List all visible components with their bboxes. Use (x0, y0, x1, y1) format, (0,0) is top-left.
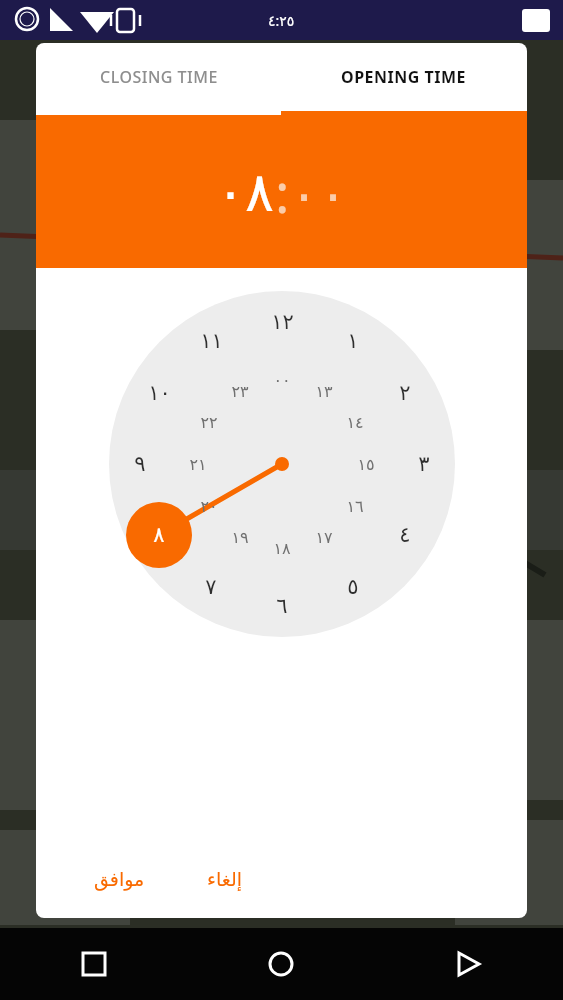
staticText: ٥ (347, 575, 359, 599)
button[interactable]: ٧ (192, 568, 230, 606)
button[interactable]: إلغاء (191, 858, 258, 900)
staticText: :٠٠ (275, 155, 348, 229)
staticText: ١٤ (346, 413, 364, 432)
button[interactable]: ١٨ (263, 529, 301, 567)
button[interactable]: ١١ (192, 322, 230, 360)
staticText: ١٣ (315, 382, 333, 401)
button[interactable]: ٦ (263, 587, 301, 625)
button[interactable]: ١٤ (336, 403, 374, 441)
button[interactable]: Recents (0, 928, 187, 1000)
button[interactable]: ١٣ (305, 372, 343, 410)
button[interactable]: ٢٢ (190, 403, 228, 441)
button[interactable]: OPENING TIME (281, 43, 527, 111)
button[interactable]: ٩ (121, 445, 159, 483)
staticText: ١ (347, 329, 359, 353)
button[interactable]: ١٦ (336, 487, 374, 525)
staticText: ٢٣ (231, 382, 249, 401)
staticText: ٠٠ (273, 371, 291, 390)
staticText: ٩ (134, 452, 146, 476)
staticText: OPENING TIME (341, 66, 467, 88)
staticText: ٢١ (189, 455, 207, 474)
staticText: إلغاء (207, 868, 242, 890)
staticText: ٣ (418, 452, 430, 476)
staticText: موافق (94, 868, 145, 890)
button[interactable]: CLOSING TIME (36, 43, 281, 111)
button[interactable]: ٢٣ (221, 372, 259, 410)
button[interactable]: ٤ (386, 516, 424, 554)
button[interactable]: ٢١ (179, 445, 217, 483)
staticText: ١٢ (271, 310, 294, 334)
staticText: CLOSING TIME (100, 66, 218, 88)
button[interactable]: موافق (78, 858, 161, 900)
button[interactable]: ٥ (334, 568, 372, 606)
staticText: ٠٨ (216, 161, 275, 224)
staticText: ٢٢ (200, 413, 218, 432)
button[interactable]: Home (187, 928, 375, 1000)
staticText: ١١ (200, 329, 223, 353)
staticText: ٦ (276, 594, 288, 618)
button[interactable]: ٨ (140, 516, 178, 554)
button[interactable]: ٢ (386, 374, 424, 412)
button[interactable]: ١٩ (221, 518, 259, 556)
staticText: ١٩ (231, 528, 249, 547)
button[interactable]: ١٥ (347, 445, 385, 483)
staticText: ٤:٢٥ (268, 11, 295, 30)
button[interactable]: Back (375, 928, 563, 1000)
staticText: ٨ (153, 523, 165, 547)
staticText: ١٦ (346, 497, 364, 516)
staticText: ٧ (205, 575, 217, 599)
button[interactable]: ١٠ (140, 374, 178, 412)
button[interactable]: ١٧ (305, 518, 343, 556)
button[interactable]: ١٢ (263, 303, 301, 341)
staticText: ١٠ (148, 381, 171, 405)
staticText: ٢٠ (200, 497, 218, 516)
staticText: ٢ (399, 381, 411, 405)
staticText: ١٧ (315, 528, 333, 547)
staticText: ٤ (399, 523, 411, 547)
staticText: ١٨ (273, 539, 291, 558)
staticText: ١٥ (357, 455, 375, 474)
button[interactable]: ٣ (405, 445, 443, 483)
button[interactable]: ٠٠ (263, 361, 301, 399)
button[interactable]: ٢٠ (190, 487, 228, 525)
button[interactable]: ١ (334, 322, 372, 360)
